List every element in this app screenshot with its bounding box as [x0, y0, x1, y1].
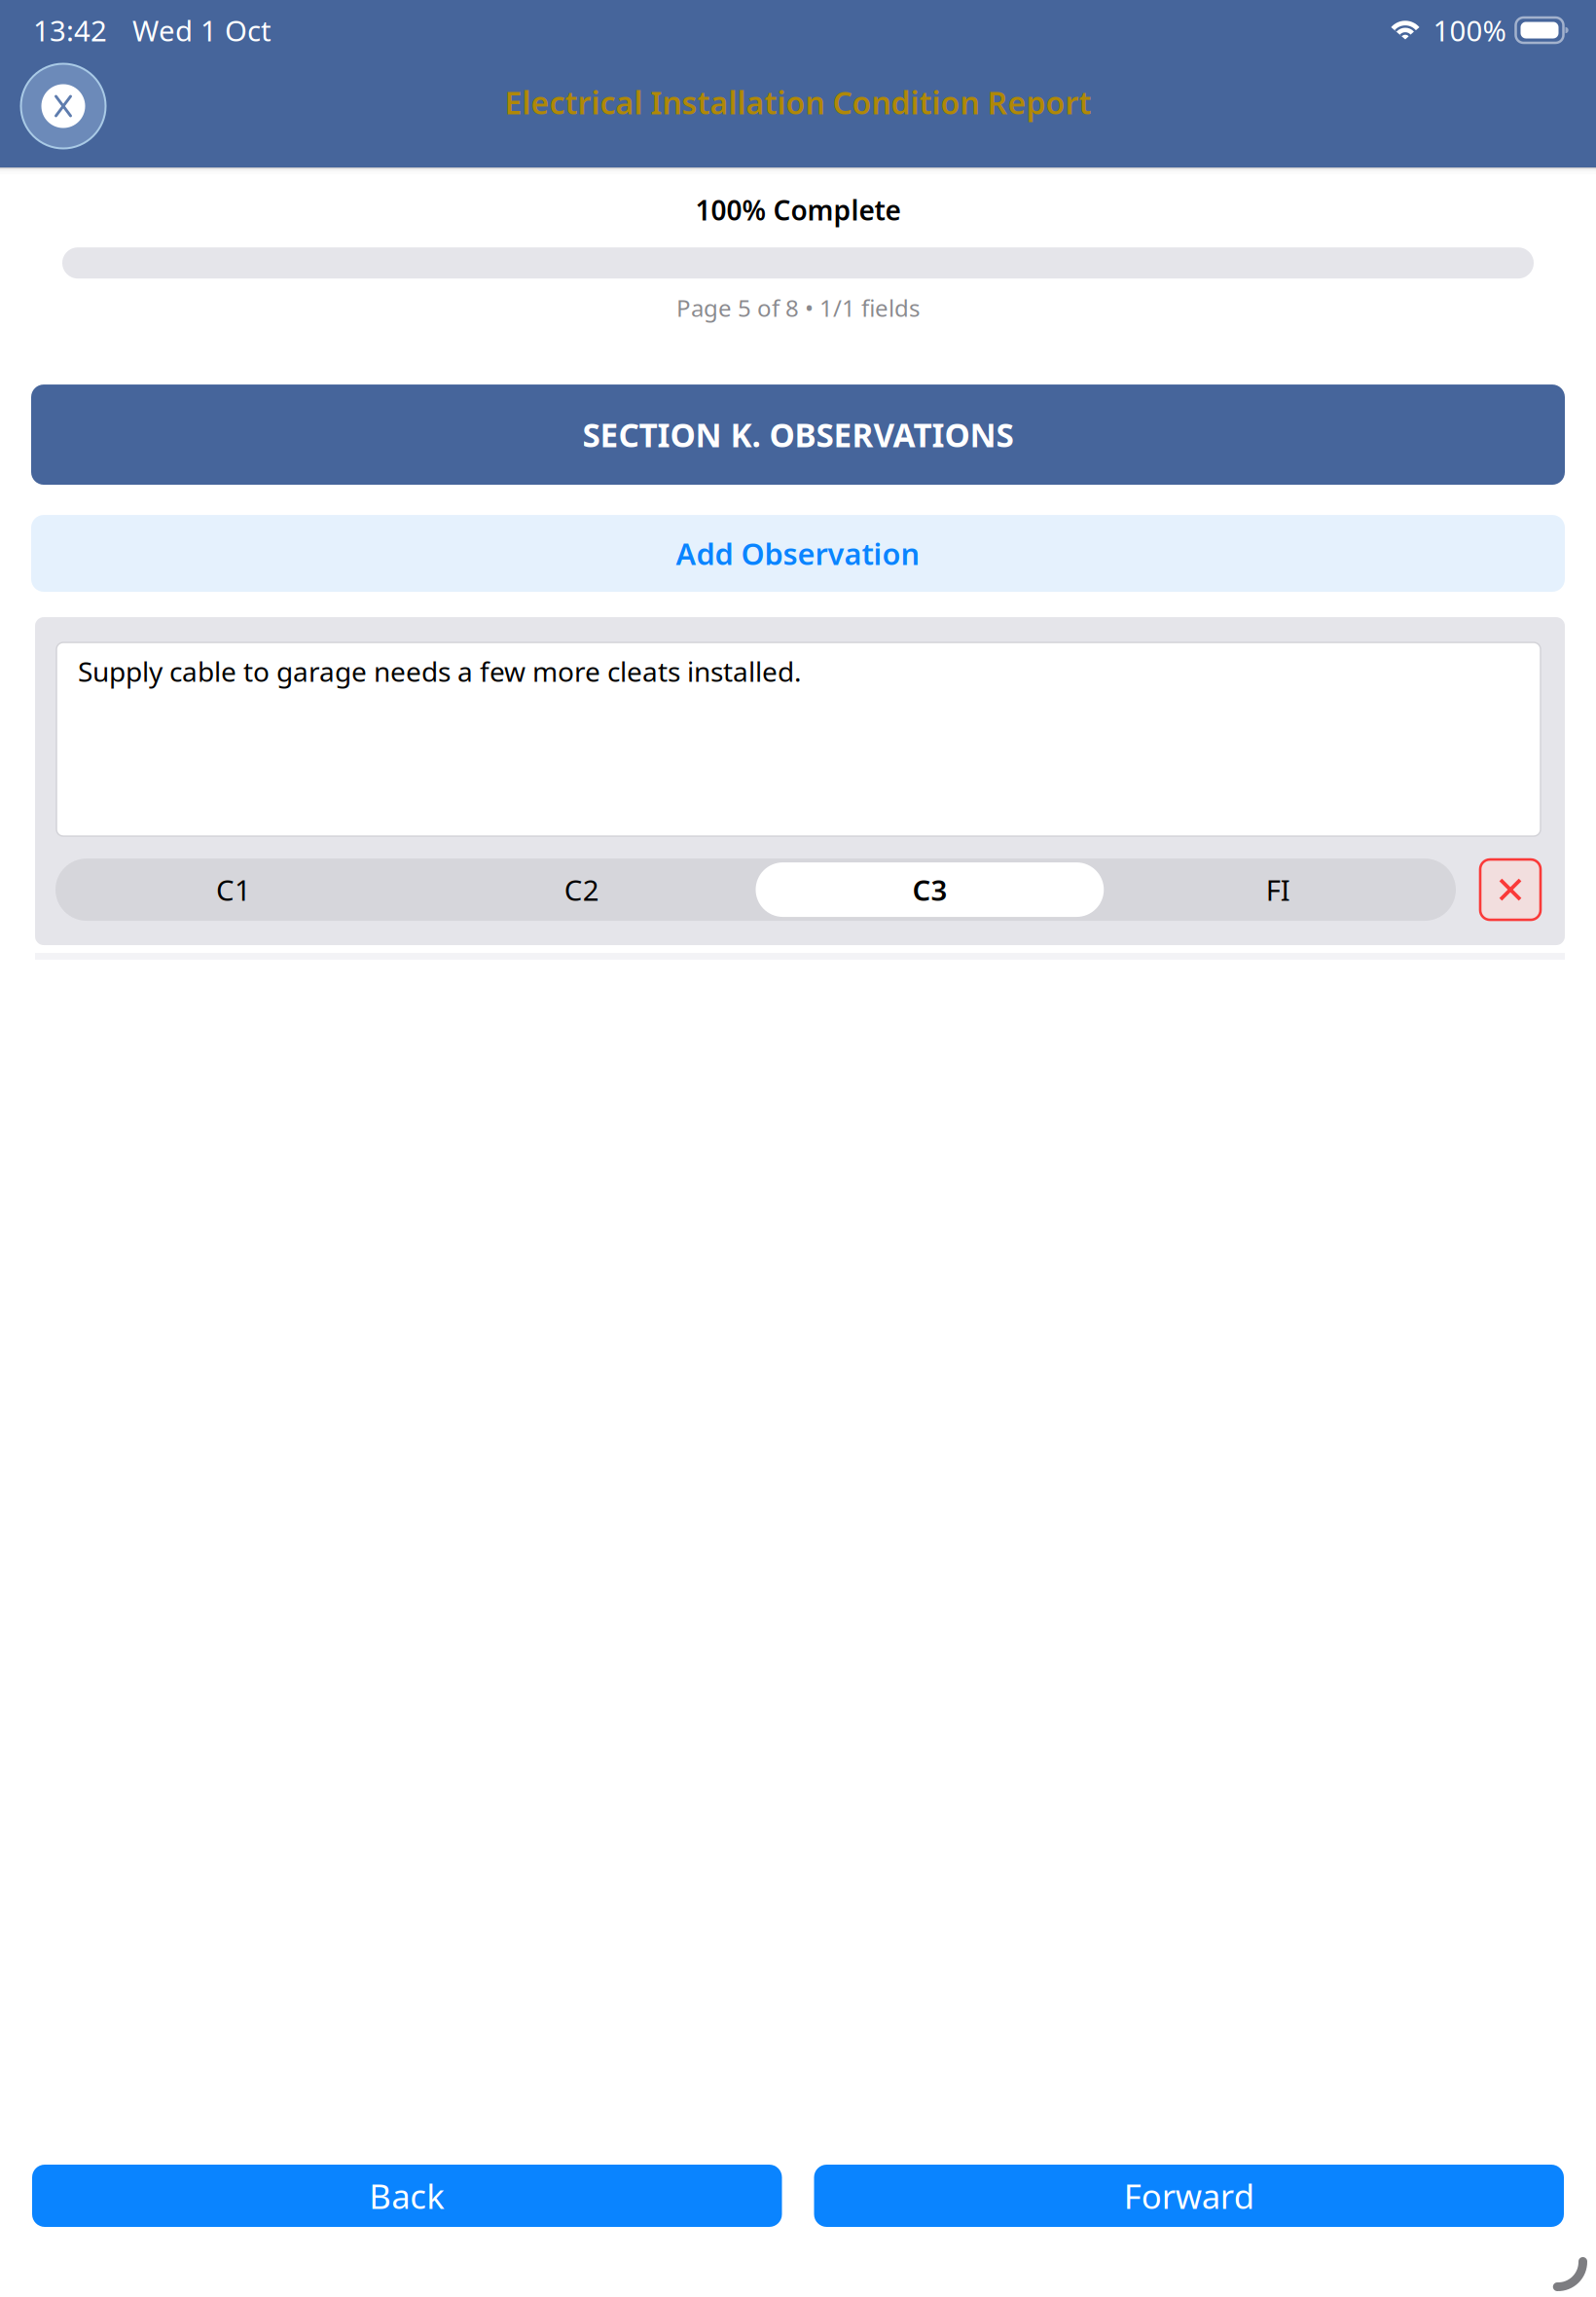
staticText: C1: [216, 871, 251, 909]
button[interactable]: Close: [19, 62, 107, 150]
staticText: 13:42: [33, 11, 107, 49]
button[interactable]: Back: [32, 2165, 782, 2227]
staticText: Supply cable to garage needs a few more …: [78, 653, 802, 689]
button[interactable]: C1: [59, 862, 408, 917]
staticText: Page 5 of 8 • 1/1 fields: [676, 292, 920, 323]
staticText: 100% Complete: [695, 192, 901, 228]
staticText: Electrical Installation Condition Report: [505, 82, 1091, 123]
staticText: C2: [564, 871, 599, 909]
staticText: C3: [912, 871, 947, 909]
button[interactable]: FI: [1104, 862, 1452, 917]
staticText: SECTION K. OBSERVATIONS: [582, 413, 1014, 456]
staticText: 100%: [1433, 11, 1506, 49]
button[interactable]: C3: [756, 862, 1104, 917]
button[interactable]: C2: [408, 862, 756, 917]
button[interactable]: Forward: [814, 2165, 1564, 2227]
staticText: Add Observation: [676, 534, 920, 573]
staticText: Forward: [1124, 2173, 1254, 2218]
staticText: Wed 1 Oct: [132, 11, 272, 49]
button[interactable]: Delete observation: [1480, 860, 1541, 920]
staticText: Back: [369, 2173, 445, 2218]
button[interactable]: Add Observation: [0, 515, 1596, 592]
staticText: FI: [1266, 871, 1290, 909]
